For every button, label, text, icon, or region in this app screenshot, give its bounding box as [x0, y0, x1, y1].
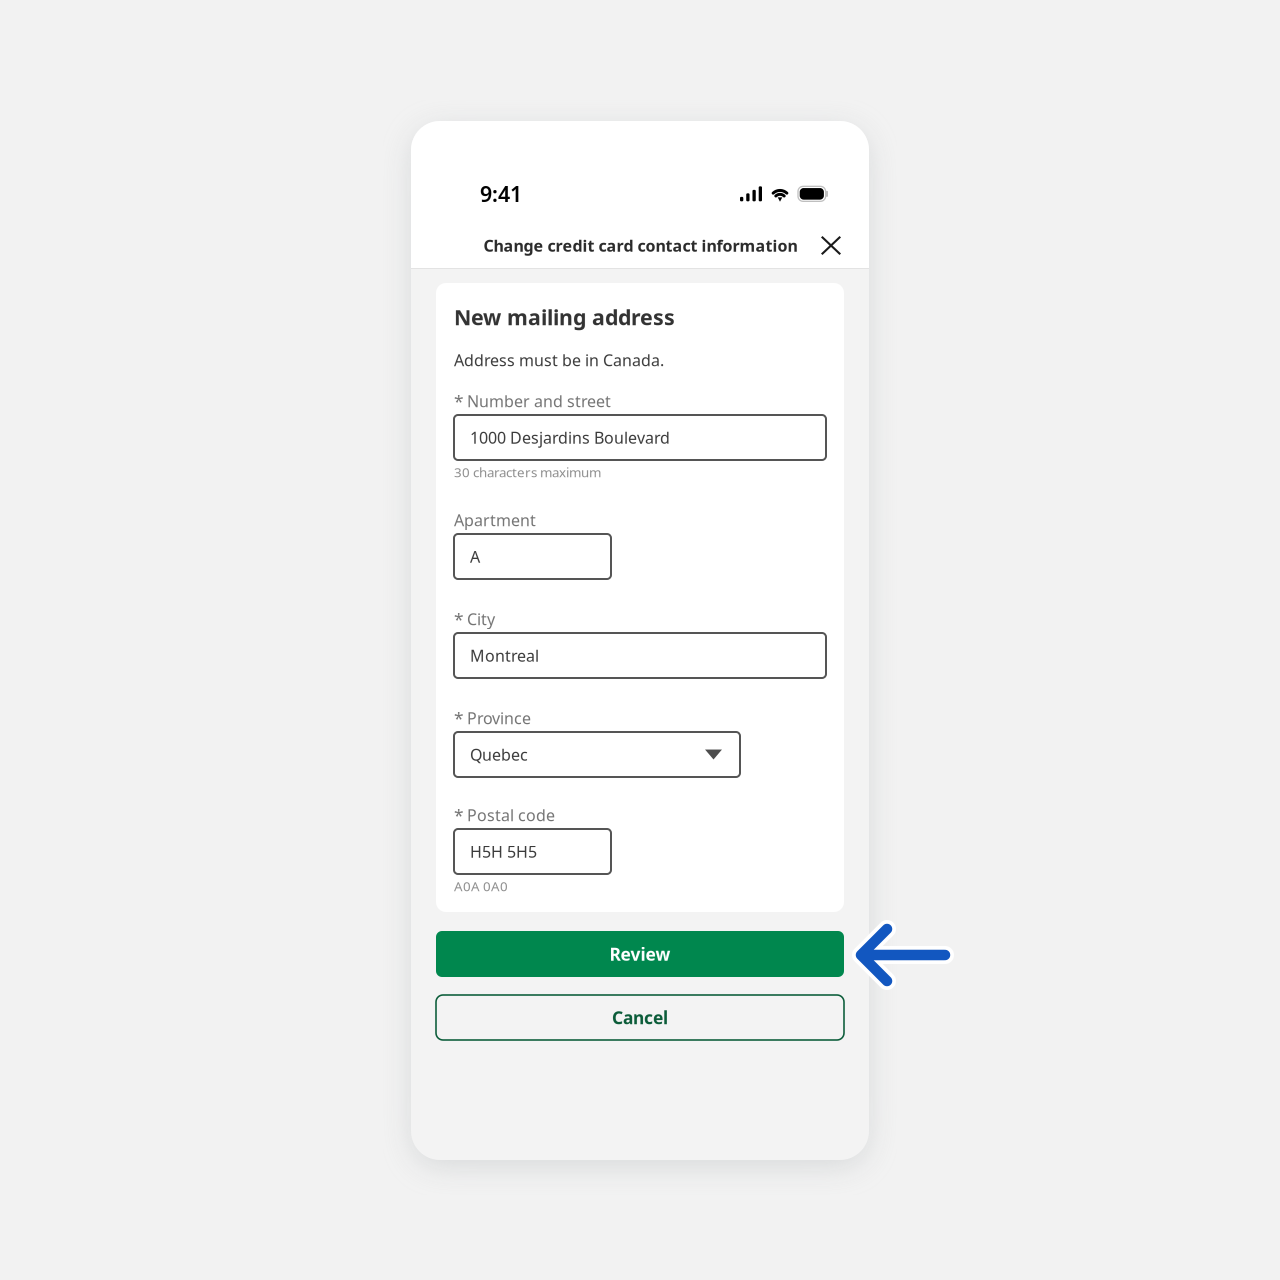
button[interactable]: Close: [810, 226, 852, 265]
staticText: A0A 0A0: [454, 877, 508, 895]
staticText: New mailing address: [454, 303, 675, 331]
staticText: A: [470, 546, 480, 567]
staticText: Change credit card contact information: [483, 235, 797, 256]
button[interactable]: 1000 Desjardins Boulevard: [454, 415, 826, 460]
button[interactable]: Quebec: [454, 732, 740, 777]
staticText: *: [454, 390, 464, 413]
staticText: H5H 5H5: [470, 841, 537, 862]
staticText: 1000 Desjardins Boulevard: [470, 427, 670, 448]
staticText: Cancel: [612, 1006, 668, 1029]
button[interactable]: Cancel: [436, 995, 844, 1040]
staticText: 30 characters maximum: [454, 463, 601, 481]
staticText: *: [454, 707, 464, 730]
button[interactable]: A: [454, 534, 611, 579]
staticText: Review: [609, 942, 670, 965]
staticText: Quebec: [470, 744, 528, 765]
staticText: *: [454, 608, 464, 631]
staticText: Number and street: [467, 390, 611, 412]
button[interactable]: H5H 5H5: [454, 829, 611, 874]
staticText: Province: [467, 707, 531, 729]
button[interactable]: Montreal: [454, 633, 826, 678]
staticText: 9:41: [480, 180, 522, 208]
staticText: Montreal: [470, 645, 539, 666]
button[interactable]: Review: [436, 931, 844, 977]
staticText: City: [467, 608, 495, 630]
staticText: *: [454, 804, 464, 827]
staticText: Postal code: [467, 804, 555, 826]
staticText: Apartment: [454, 509, 536, 531]
staticText: Address must be in Canada.: [454, 349, 664, 371]
